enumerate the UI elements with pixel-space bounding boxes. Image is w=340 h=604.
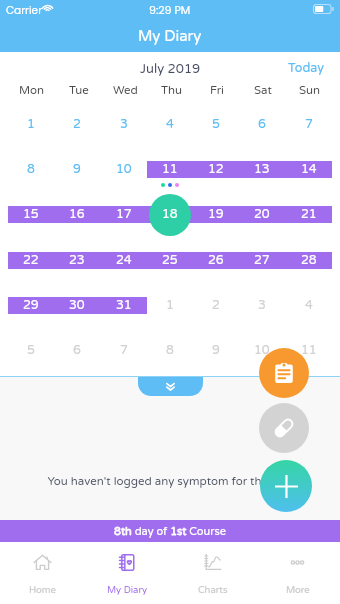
staticText: 15: [23, 207, 39, 222]
button[interactable]: 14: [286, 147, 332, 192]
staticText: 23: [69, 253, 85, 268]
button[interactable]: 3: [101, 102, 147, 147]
button[interactable]: 15: [8, 192, 54, 237]
button[interactable]: 11: [147, 147, 193, 192]
button[interactable]: 5: [8, 328, 54, 373]
staticText: Tue: [69, 83, 89, 97]
staticText: 16: [69, 207, 85, 222]
button[interactable]: 31: [101, 283, 147, 328]
staticText: July 2019: [140, 61, 201, 77]
staticText: 4: [305, 298, 313, 313]
button[interactable]: 28: [286, 238, 332, 283]
button[interactable]: 17: [101, 192, 147, 237]
staticText: Sun: [299, 83, 320, 97]
button[interactable]: Today: [288, 61, 324, 76]
button[interactable]: 24: [101, 238, 147, 283]
staticText: 3: [258, 298, 266, 313]
button[interactable]: 4: [286, 283, 332, 328]
button[interactable]: 16: [54, 192, 100, 237]
staticText: 9: [73, 162, 81, 177]
button[interactable]: 19: [193, 192, 239, 237]
button[interactable]: 13: [239, 147, 285, 192]
staticText: Thu: [161, 83, 182, 97]
button[interactable]: 25: [147, 238, 193, 283]
staticText: You haven't logged any symptom for this …: [47, 474, 293, 488]
button[interactable]: 1: [8, 102, 54, 147]
staticText: 9: [212, 343, 220, 358]
staticText: 1: [166, 298, 174, 313]
staticText: Home: [29, 584, 56, 595]
staticText: My Diary: [107, 584, 148, 595]
staticText: 6: [258, 117, 266, 132]
button[interactable]: 10: [239, 328, 285, 373]
button[interactable]: 5: [193, 102, 239, 147]
staticText: 25: [162, 253, 178, 268]
staticText: 3: [120, 117, 128, 132]
button[interactable]: 10: [101, 147, 147, 192]
staticText: 1: [27, 117, 35, 132]
staticText: 5: [212, 117, 220, 132]
button[interactable]: 3: [239, 283, 285, 328]
button[interactable]: 7: [101, 328, 147, 373]
staticText: 9:29 PM: [149, 2, 191, 17]
button[interactable]: 22: [8, 238, 54, 283]
button[interactable]: Expand calendar: [138, 377, 203, 396]
button[interactable]: 11: [286, 328, 332, 373]
button[interactable]: 9: [54, 147, 100, 192]
button[interactable]: Charts: [170, 542, 255, 604]
staticText: 11: [301, 343, 317, 358]
staticText: 31: [116, 298, 132, 313]
button[interactable]: 26: [193, 238, 239, 283]
button[interactable]: 20: [239, 192, 285, 237]
staticText: 29: [23, 298, 39, 313]
staticText: Charts: [198, 584, 228, 595]
staticText: 11: [162, 162, 178, 177]
staticText: 21: [301, 207, 317, 222]
staticText: 7: [305, 117, 313, 132]
staticText: 12: [208, 162, 224, 177]
button[interactable]: 8: [8, 147, 54, 192]
button[interactable]: 30: [54, 283, 100, 328]
button[interactable]: 8th day of 1st Course: [0, 520, 340, 542]
staticText: 26: [208, 253, 224, 268]
button[interactable]: 18: [147, 192, 193, 237]
staticText: 8: [166, 343, 174, 358]
staticText: 24: [116, 253, 132, 268]
button[interactable]: 12: [193, 147, 239, 192]
button[interactable]: Medication: [259, 403, 309, 453]
staticText: 22: [23, 253, 39, 268]
staticText: 18: [162, 207, 178, 222]
button[interactable]: 2: [193, 283, 239, 328]
button[interactable]: 21: [286, 192, 332, 237]
staticText: 2: [73, 117, 81, 132]
button[interactable]: 7: [286, 102, 332, 147]
staticText: Sat: [254, 83, 272, 97]
button[interactable]: More: [255, 542, 340, 604]
staticText: Wed: [113, 83, 138, 97]
button[interactable]: 6: [239, 102, 285, 147]
button[interactable]: 2: [54, 102, 100, 147]
button[interactable]: 9: [193, 328, 239, 373]
button[interactable]: 8: [147, 328, 193, 373]
button[interactable]: 27: [239, 238, 285, 283]
staticText: 8: [27, 162, 35, 177]
button[interactable]: Add entry: [260, 460, 312, 512]
staticText: 20: [254, 207, 270, 222]
staticText: 4: [166, 117, 174, 132]
staticText: 6: [73, 343, 81, 358]
button[interactable]: 6: [54, 328, 100, 373]
staticText: Mon: [19, 83, 44, 97]
staticText: 2: [212, 298, 220, 313]
staticText: 19: [208, 207, 224, 222]
staticText: 13: [254, 162, 270, 177]
staticText: Fri: [210, 83, 224, 97]
button[interactable]: 4: [147, 102, 193, 147]
button[interactable]: 29: [8, 283, 54, 328]
button[interactable]: Notes: [259, 348, 309, 398]
button[interactable]: 1: [147, 283, 193, 328]
button[interactable]: Home: [0, 542, 85, 604]
staticText: Today: [288, 61, 324, 76]
staticText: 30: [69, 298, 85, 313]
button[interactable]: My Diary: [85, 542, 170, 604]
button[interactable]: 23: [54, 238, 100, 283]
